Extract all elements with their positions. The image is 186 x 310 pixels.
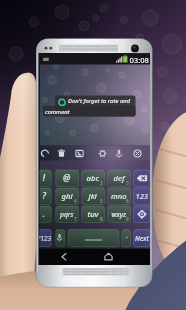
button[interactable] <box>0 0 186 310</box>
